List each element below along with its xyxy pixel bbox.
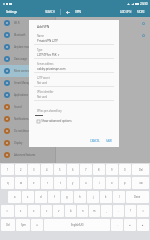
button[interactable]: 0 <box>119 164 131 175</box>
button[interactable]: ADD VPN <box>118 7 134 17</box>
staticText: p <box>124 181 126 185</box>
staticText: Sym <box>21 223 26 227</box>
staticText: Advanced features <box>14 153 36 157</box>
button[interactable]: r <box>41 177 53 189</box>
button[interactable]: u <box>80 177 92 189</box>
button[interactable]: k <box>100 191 112 203</box>
button[interactable]: n <box>77 205 88 217</box>
staticText: w <box>20 181 22 185</box>
button[interactable]: MORE <box>134 7 150 17</box>
staticText: Del <box>139 168 143 172</box>
staticText: m <box>93 209 96 213</box>
button[interactable]: ⊙ <box>31 219 43 231</box>
button[interactable]: VPN settings <box>56 29 150 41</box>
button[interactable]: Advanced features <box>0 149 55 161</box>
button[interactable]: e <box>28 177 40 189</box>
button[interactable]: Sound <box>0 101 55 113</box>
button[interactable]: Applications <box>0 89 55 101</box>
button[interactable]: d <box>35 191 47 203</box>
button[interactable]: Bluetooth <box>0 29 55 41</box>
staticText: u <box>85 181 87 185</box>
button[interactable]: x <box>28 205 40 217</box>
button[interactable]: Data usage <box>0 53 55 65</box>
button[interactable]: h <box>74 191 86 203</box>
button[interactable]: j <box>87 191 99 203</box>
button[interactable]: English(UK) <box>44 219 110 231</box>
staticText: Data usage <box>14 57 27 61</box>
staticText: CANCEL <box>90 139 100 143</box>
button[interactable]: w <box>15 177 27 189</box>
button[interactable]: a <box>8 191 21 203</box>
button[interactable]: ◂ <box>124 219 136 231</box>
button[interactable]: Ctrl <box>1 219 15 231</box>
other: VPN settings <box>142 22 145 25</box>
button[interactable]: SAVE <box>103 139 112 143</box>
button[interactable]: s <box>22 191 34 203</box>
button[interactable]: t <box>54 177 66 189</box>
button[interactable]: 2 <box>15 164 27 175</box>
button[interactable]: v <box>53 205 64 217</box>
button[interactable]: Display <box>0 137 55 149</box>
button[interactable]: Airplane mode <box>0 41 55 53</box>
button[interactable]: Sym <box>16 219 30 231</box>
button[interactable]: Del <box>132 164 149 175</box>
staticText: IPSec pre-shared key <box>37 109 62 113</box>
staticText: 0 <box>124 168 126 172</box>
staticText: 23:30 <box>140 2 148 6</box>
button[interactable]: l <box>113 191 125 203</box>
button[interactable]: 5 <box>54 164 66 175</box>
staticText: d <box>40 195 42 199</box>
button[interactable]: 3 <box>28 164 40 175</box>
staticText: Notifications <box>14 117 29 121</box>
button[interactable]: Wi-Fi <box>0 17 55 29</box>
button[interactable]: VPN settings <box>56 17 150 29</box>
button[interactable]: b <box>65 205 76 217</box>
button[interactable]: c <box>41 205 52 217</box>
staticText: y <box>72 181 74 185</box>
button[interactable]: f <box>48 191 60 203</box>
button[interactable]: Smart Manager <box>0 77 55 89</box>
button[interactable]: p <box>119 177 131 189</box>
button[interactable]: q <box>1 177 14 189</box>
button[interactable]: m <box>89 205 100 217</box>
staticText: Type <box>37 48 43 52</box>
button[interactable]: y <box>67 177 79 189</box>
staticText: ▾ <box>57 53 60 57</box>
button[interactable]: Show advanced options <box>37 116 119 126</box>
button[interactable]: 7 <box>80 164 92 175</box>
button[interactable]: ⇧ <box>137 205 149 217</box>
button[interactable]: 8 <box>93 164 105 175</box>
button[interactable]: i <box>93 177 105 189</box>
button[interactable]: z <box>15 205 27 217</box>
staticText: Sound <box>14 105 22 109</box>
button[interactable]: ⌫ <box>132 177 149 189</box>
button[interactable]: Done <box>126 191 149 203</box>
button[interactable]: More connection settings <box>0 65 55 77</box>
button[interactable]: g <box>61 191 73 203</box>
button[interactable]: Do not disturb <box>0 125 55 137</box>
staticText: Settings <box>6 10 17 14</box>
button[interactable]: ? <box>125 205 136 217</box>
staticText: n <box>82 209 84 213</box>
button[interactable]: 1 <box>1 164 14 175</box>
button[interactable]: Settings <box>0 7 39 17</box>
staticText: Smart Manager <box>14 81 32 85</box>
button[interactable]: ▸ <box>137 219 149 231</box>
button[interactable]: CANCEL <box>87 139 103 143</box>
staticText: Show advanced options <box>40 119 72 123</box>
button[interactable]: 6 <box>67 164 79 175</box>
button[interactable]: o <box>106 177 118 189</box>
staticText: 7 <box>85 168 87 172</box>
staticText: Done <box>134 195 141 199</box>
staticText: SEARCH <box>45 10 55 14</box>
button[interactable]: Back <box>61 7 74 17</box>
button[interactable]: SEARCH <box>39 7 60 17</box>
button[interactable]: 4 <box>41 164 53 175</box>
button[interactable]: Notifications <box>0 113 55 125</box>
staticText: k <box>105 195 107 199</box>
button[interactable]: ⇧ <box>1 205 14 217</box>
button[interactable]: 9 <box>106 164 118 175</box>
